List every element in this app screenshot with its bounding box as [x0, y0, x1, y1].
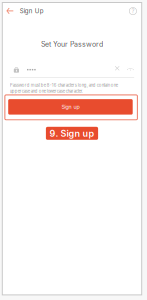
- staticText: Password must be 8-16 characters long, a…: [10, 83, 118, 88]
- staticText: uppercase and one lowercase character.: [10, 89, 83, 94]
- button[interactable]: Help: [129, 6, 142, 20]
- staticText: Sign Up: [20, 7, 44, 15]
- staticText: Sign up: [61, 104, 79, 110]
- button[interactable]: 9. Sign up: [46, 127, 98, 140]
- button[interactable]: Show password: [127, 66, 134, 70]
- staticText: Set Your Password: [41, 40, 103, 48]
- staticText: 9. Sign up: [49, 128, 94, 139]
- staticText: ?: [131, 7, 134, 15]
- button[interactable]: Back: [2, 6, 20, 20]
- button[interactable]: Sign up: [5, 95, 137, 120]
- button[interactable]: Sign Up: [20, 5, 44, 21]
- button[interactable]: Clear password: [115, 66, 119, 70]
